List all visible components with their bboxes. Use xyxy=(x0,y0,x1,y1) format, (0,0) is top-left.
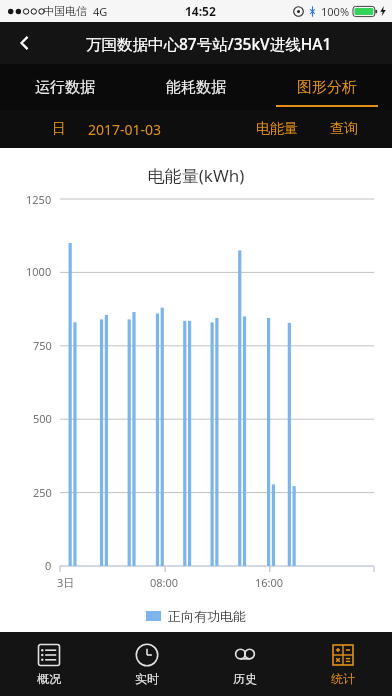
staticText: 运行数据 xyxy=(35,78,95,97)
staticText: 0 xyxy=(45,558,52,573)
button[interactable]: 能耗数据 xyxy=(130,64,261,110)
staticText: 日 xyxy=(52,120,66,138)
staticText: 统计 xyxy=(331,671,355,686)
staticText: 查询 xyxy=(330,120,358,138)
button[interactable]: 图形分析 xyxy=(261,64,392,110)
staticText: 万国数据中心87号站/35kV进线HA1 xyxy=(86,33,332,54)
staticText: 2017-01-03 xyxy=(88,120,162,139)
button[interactable]: 概况 xyxy=(0,632,98,696)
button[interactable]: 实时 xyxy=(98,632,196,696)
staticText: 4G xyxy=(93,4,108,19)
staticText: 实时 xyxy=(135,671,159,686)
staticText: 500 xyxy=(33,411,52,426)
staticText: 1250 xyxy=(26,192,52,207)
staticText: 历史 xyxy=(233,671,257,686)
button[interactable]: 历史 xyxy=(196,632,294,696)
staticText: 14:52 xyxy=(185,3,216,19)
staticText: 图形分析 xyxy=(297,78,357,97)
staticText: 3日 xyxy=(57,575,75,590)
button[interactable]: 运行数据 xyxy=(0,64,130,110)
button[interactable]: 电能量 xyxy=(252,116,302,142)
button[interactable]: 2017-01-03 xyxy=(84,116,166,143)
staticText: 100% xyxy=(321,4,350,19)
staticText: 电能量(kWh) xyxy=(0,164,392,187)
staticText: 正向有功电能 xyxy=(168,608,246,624)
button[interactable]: 日 xyxy=(48,116,70,142)
staticText: 250 xyxy=(33,485,52,500)
staticText: 概况 xyxy=(37,671,61,686)
staticText: 1000 xyxy=(26,264,52,279)
staticText: 中国电信 xyxy=(43,4,87,18)
staticText: 08:00 xyxy=(150,575,179,590)
staticText: 750 xyxy=(33,338,52,353)
button[interactable]: 查询 xyxy=(326,116,362,142)
button[interactable]: 统计 xyxy=(294,632,392,696)
button[interactable]: Back xyxy=(0,22,50,64)
staticText: 能耗数据 xyxy=(166,78,226,97)
staticText: 16:00 xyxy=(255,575,284,590)
staticText: 电能量 xyxy=(256,120,298,138)
